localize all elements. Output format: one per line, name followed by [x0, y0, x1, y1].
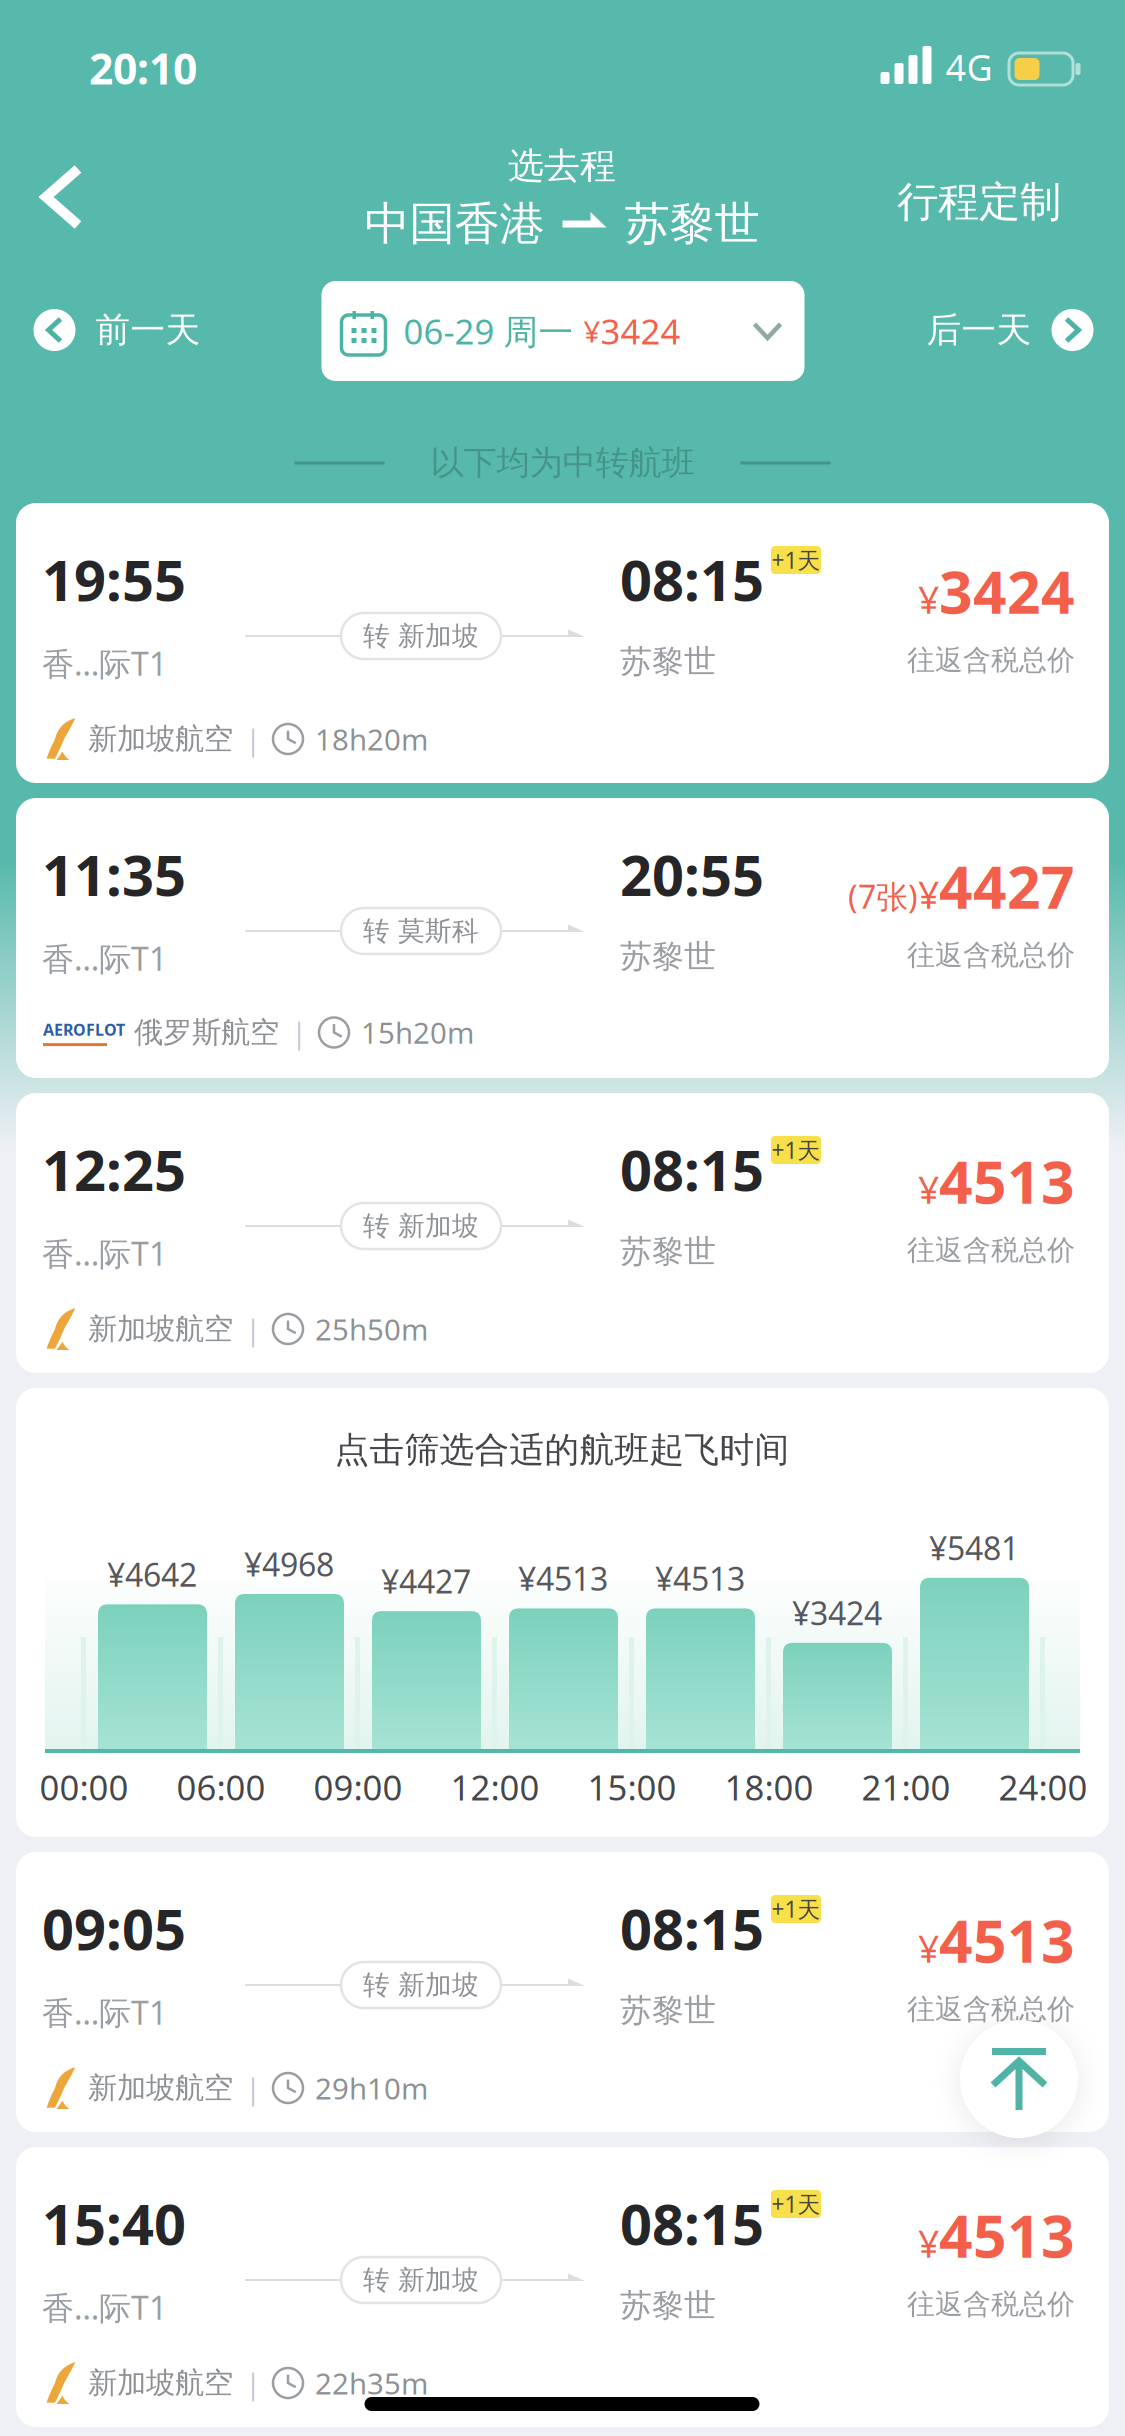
staticText: 25h50m	[315, 1309, 428, 1348]
staticText: 08:15	[620, 2186, 764, 2260]
staticText: 行程定制	[897, 177, 1061, 227]
staticText: 往返含税总价	[907, 643, 1075, 677]
staticText: 20:55	[620, 837, 764, 911]
staticText: 15h20m	[361, 1013, 474, 1052]
staticText: ¥3424	[792, 1592, 882, 1634]
staticText: ¥4427	[381, 1560, 471, 1602]
staticText: ¥	[918, 574, 939, 624]
staticText: 选去程	[508, 144, 616, 188]
staticText: 18h20m	[315, 719, 428, 758]
staticText: 苏黎世	[620, 642, 716, 681]
button[interactable]: 后一天	[926, 309, 1093, 351]
staticText: 22h35m	[315, 2363, 428, 2402]
staticText: 后一天	[926, 309, 1031, 351]
staticText: 4427	[939, 847, 1075, 925]
staticText: 转 新加坡	[363, 1969, 479, 2001]
button[interactable]: 12:25	[16, 1093, 1109, 1373]
staticText: 4513	[939, 1142, 1075, 1220]
staticText: ¥	[918, 869, 939, 919]
staticText: |	[245, 719, 261, 758]
staticText: 苏黎世	[620, 937, 716, 976]
staticText: |	[245, 2363, 261, 2402]
staticText: 转 新加坡	[363, 2264, 479, 2296]
staticText: 以下均为中转航班	[430, 442, 694, 483]
staticText: 3424	[600, 308, 680, 354]
button[interactable]: 回到顶部	[960, 2020, 1078, 2138]
button[interactable]: 09:05	[16, 1852, 1109, 2132]
staticText: 12:00	[450, 1764, 539, 1810]
staticText: 苏黎世	[620, 1991, 716, 2030]
staticText: ¥4642	[107, 1553, 197, 1596]
staticText: 转 新加坡	[363, 620, 479, 652]
staticText: 11:35	[42, 837, 186, 911]
button[interactable]: 筛选航班起飞时间	[16, 1388, 1109, 1837]
staticText: 新加坡航空	[88, 2070, 233, 2106]
button[interactable]: 19:55	[16, 503, 1109, 783]
staticText: 新加坡航空	[88, 1311, 233, 1347]
staticText: 06-29 周一	[403, 308, 573, 354]
staticText: 08:15	[620, 1132, 764, 1206]
button[interactable]: 前一天	[33, 309, 200, 351]
staticText: ¥	[583, 311, 600, 350]
staticText: 苏黎世	[620, 1232, 716, 1271]
staticText: 中国香港	[364, 196, 544, 252]
staticText: 09:00	[313, 1764, 402, 1810]
staticText: ¥5481	[929, 1527, 1019, 1569]
staticText: 香…际T1	[42, 1232, 167, 1274]
staticText: 新加坡航空	[88, 721, 233, 757]
staticText: 香…际T1	[42, 1991, 167, 2033]
button[interactable]: 06-29 周一	[321, 281, 804, 381]
staticText: 香…际T1	[42, 937, 167, 979]
staticText: 点击筛选合适的航班起飞时间	[334, 1429, 789, 1471]
staticText: 06:00	[176, 1764, 265, 1810]
staticText: 08:15	[620, 542, 764, 616]
staticText: 24:00	[998, 1764, 1087, 1810]
staticText: 俄罗斯航空	[134, 1014, 279, 1050]
button[interactable]: Back	[28, 159, 96, 235]
staticText: 香…际T1	[42, 2286, 167, 2328]
staticText: (7张)	[848, 875, 918, 918]
staticText: 19:55	[42, 542, 186, 616]
staticText: 往返含税总价	[907, 1992, 1075, 2026]
staticText: 09:05	[42, 1891, 186, 1965]
staticText: 往返含税总价	[907, 2287, 1075, 2321]
staticText: 转 莫斯科	[363, 915, 479, 947]
staticText: 前一天	[95, 309, 200, 351]
staticText: 29h10m	[315, 2068, 428, 2107]
staticText: +1天	[771, 1894, 820, 1924]
staticText: |	[245, 2068, 261, 2107]
staticText: 香…际T1	[42, 642, 167, 684]
staticText: +1天	[771, 545, 820, 575]
staticText: 15:40	[42, 2186, 186, 2260]
staticText: +1天	[771, 1135, 820, 1165]
button[interactable]: 行程定制	[897, 177, 1061, 227]
staticText: 18:00	[724, 1764, 813, 1810]
button[interactable]: 15:40	[16, 2147, 1109, 2427]
staticText: 20:10	[89, 40, 197, 96]
staticText: ¥	[918, 1923, 939, 1973]
staticText: 15:00	[587, 1764, 676, 1810]
staticText: 21:00	[861, 1764, 950, 1810]
staticText: 往返含税总价	[907, 1233, 1075, 1267]
staticText: ¥4513	[655, 1557, 745, 1600]
staticText: 4513	[939, 2196, 1075, 2274]
staticText: |	[291, 1013, 307, 1052]
staticText: +1天	[771, 2189, 820, 2219]
staticText: ¥	[918, 2218, 939, 2268]
staticText: ¥4513	[518, 1557, 608, 1600]
staticText: 苏黎世	[624, 196, 759, 252]
staticText: 新加坡航空	[88, 2365, 233, 2401]
staticText: 4513	[939, 1901, 1075, 1979]
staticText: 00:00	[39, 1764, 128, 1810]
staticText: 往返含税总价	[907, 938, 1075, 972]
staticText: ¥4968	[244, 1543, 334, 1585]
staticText: |	[245, 1309, 261, 1348]
staticText: ¥	[918, 1164, 939, 1214]
staticText: 08:15	[620, 1891, 764, 1965]
staticText: 转 新加坡	[363, 1210, 479, 1242]
staticText: 苏黎世	[620, 2286, 716, 2325]
staticText: AEROFLOT	[43, 1019, 125, 1040]
button[interactable]: 11:35	[16, 798, 1109, 1078]
staticText: 3424	[939, 552, 1075, 630]
staticText: 12:25	[42, 1132, 186, 1206]
